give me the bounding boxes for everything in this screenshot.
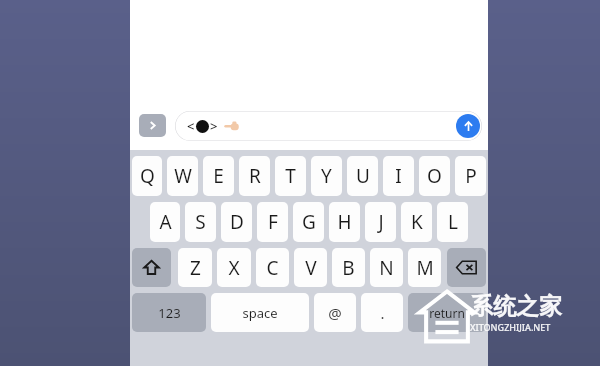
button[interactable]: M [408, 248, 441, 287]
button[interactable]: Send [456, 114, 480, 138]
button[interactable]: H [329, 202, 360, 242]
button[interactable]: D [221, 202, 252, 242]
button[interactable]: K [401, 202, 432, 242]
button[interactable]: Q [132, 156, 162, 196]
button[interactable]: C [256, 248, 289, 287]
button[interactable]: V [294, 248, 327, 287]
staticText: B [342, 255, 355, 281]
button[interactable]: Shift [132, 248, 171, 287]
staticText: X [228, 255, 240, 281]
button[interactable]: space [211, 293, 309, 332]
staticText: T [285, 163, 296, 189]
staticText: I [395, 163, 402, 189]
staticText: N [379, 255, 394, 281]
staticText: Z [190, 255, 201, 281]
staticText: 系统之家 [470, 292, 562, 321]
button[interactable]: @ [314, 293, 356, 332]
staticText: P [465, 163, 477, 189]
button[interactable]: B [332, 248, 365, 287]
button[interactable]: U [347, 156, 378, 196]
button[interactable]: N [370, 248, 403, 287]
staticText: Q [140, 163, 155, 189]
button[interactable]: X [217, 248, 251, 287]
button[interactable]: O [419, 156, 450, 196]
staticText: J [378, 209, 384, 235]
staticText: W [174, 163, 192, 189]
staticText: @ [328, 303, 342, 323]
staticText: . [380, 303, 385, 323]
button[interactable]: 123 [132, 293, 206, 332]
staticText: O [427, 163, 442, 189]
staticText: A [159, 209, 172, 235]
button[interactable]: return [408, 293, 486, 332]
button[interactable]: W [167, 156, 198, 196]
staticText: E [213, 163, 224, 189]
staticText: G [302, 209, 316, 235]
button[interactable]: A [150, 202, 180, 242]
staticText: L [448, 209, 458, 235]
staticText: Y [321, 163, 332, 189]
staticText: XITONGZHIJIA.NET [470, 321, 551, 333]
staticText: D [230, 209, 244, 235]
button[interactable]: I [383, 156, 414, 196]
staticText: S [195, 209, 206, 235]
button[interactable]: Backspace [447, 248, 486, 287]
staticText: U [356, 163, 370, 189]
button[interactable]: R [239, 156, 270, 196]
button[interactable]: Expand app tray [139, 114, 166, 137]
button[interactable]: . [361, 293, 403, 332]
staticText: K [411, 209, 423, 235]
button[interactable]: J [365, 202, 396, 242]
button[interactable]: E [203, 156, 234, 196]
button[interactable]: Z [178, 248, 212, 287]
staticText: V [305, 255, 317, 281]
staticText: C [266, 255, 279, 281]
button[interactable]: Y [311, 156, 342, 196]
staticText: > [210, 117, 218, 135]
staticText: R [249, 163, 261, 189]
button[interactable]: < [175, 111, 482, 141]
staticText: M [416, 255, 434, 281]
staticText: F [268, 209, 278, 235]
button[interactable]: L [437, 202, 468, 242]
staticText: H [337, 209, 352, 235]
staticText: return [429, 305, 465, 321]
staticText: space [242, 304, 278, 322]
button[interactable]: G [293, 202, 324, 242]
button[interactable]: S [185, 202, 216, 242]
staticText: 123 [158, 304, 181, 322]
staticText: < [187, 117, 195, 135]
button[interactable]: F [257, 202, 288, 242]
button[interactable]: T [275, 156, 306, 196]
button[interactable]: P [455, 156, 486, 196]
